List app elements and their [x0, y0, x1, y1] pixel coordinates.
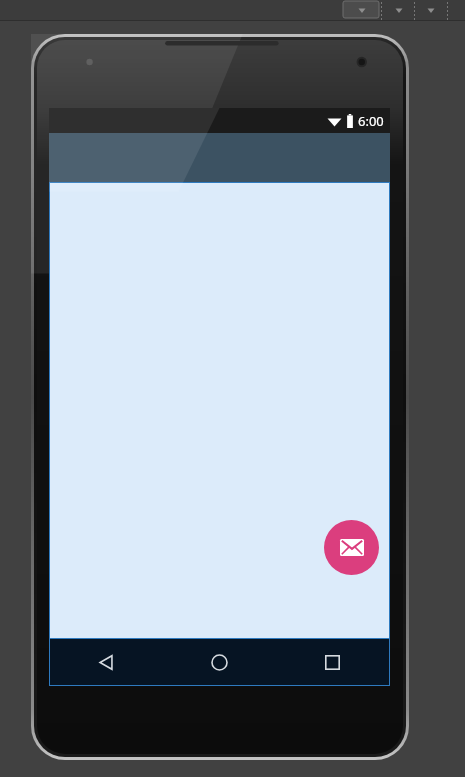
button[interactable]: Recent apps: [276, 639, 389, 685]
button[interactable]: Home: [163, 639, 276, 685]
button[interactable]: [49, 133, 390, 182]
button[interactable]: Compose message: [324, 520, 379, 575]
staticText: 6:00: [358, 112, 384, 130]
button[interactable]: Back: [50, 639, 163, 685]
